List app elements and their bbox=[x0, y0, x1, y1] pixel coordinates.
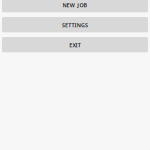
button[interactable]: NEW JOB bbox=[2, 0, 148, 12]
staticText: SETTINGS bbox=[62, 22, 88, 29]
staticText: EXIT bbox=[69, 42, 81, 49]
button[interactable]: EXIT bbox=[2, 37, 148, 52]
button[interactable]: SETTINGS bbox=[2, 17, 148, 32]
staticText: NEW JOB bbox=[62, 2, 88, 9]
